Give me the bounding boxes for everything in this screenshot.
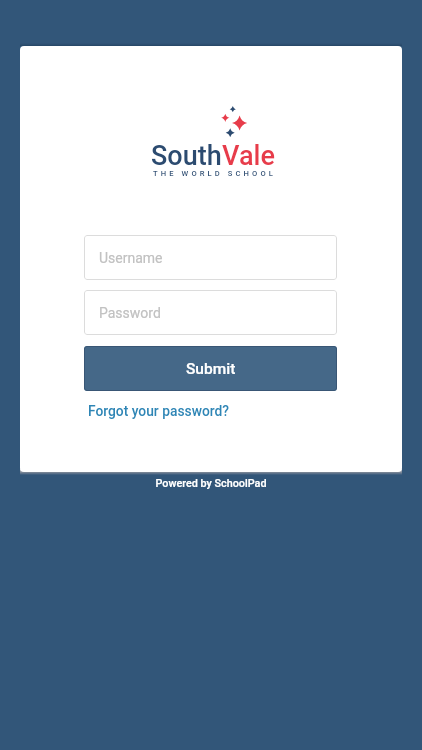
staticText: Submit: [186, 360, 236, 378]
staticText: Forgot your password?: [88, 403, 229, 419]
staticText: Password: [99, 305, 161, 321]
other: SouthVale logo: [210, 101, 270, 141]
staticText: Username: [99, 250, 163, 266]
button[interactable]: Password: [84, 290, 337, 335]
button[interactable]: Username: [84, 235, 337, 280]
staticText: Vale: [222, 140, 275, 172]
button[interactable]: Submit: [84, 346, 337, 391]
button[interactable]: Forgot your password?: [88, 403, 229, 419]
staticText: Powered by SchoolPad: [155, 477, 267, 490]
staticText: THE WORLD SCHOOL: [153, 169, 276, 178]
staticText: South: [151, 140, 222, 172]
